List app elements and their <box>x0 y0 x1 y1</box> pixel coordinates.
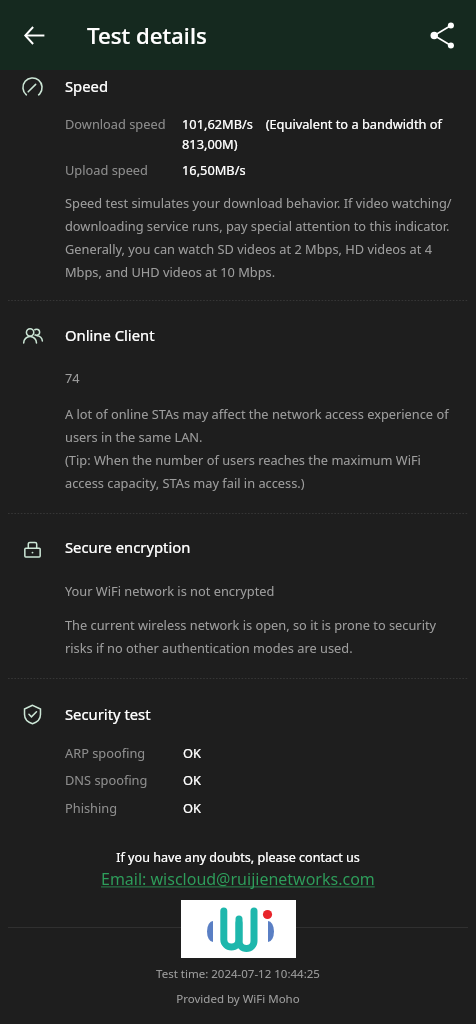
staticText: Upload speed <box>65 161 148 178</box>
staticText: ARP spoofing <box>65 744 146 761</box>
staticText: A lot of online STAs may affect the netw… <box>65 405 456 492</box>
staticText: Test details <box>87 20 207 50</box>
staticText: Speed test simulates your download behav… <box>65 194 456 281</box>
staticText: Secure encryption <box>65 537 191 557</box>
staticText: If you have any doubts, please contact u… <box>0 849 476 866</box>
staticText: The current wireless network is open, so… <box>65 616 456 657</box>
staticText: Security test <box>65 704 151 724</box>
button[interactable]: Back <box>14 15 54 55</box>
staticText: DNS spoofing <box>65 771 148 788</box>
staticText: Online Client <box>65 325 155 345</box>
staticText: OK <box>183 799 201 816</box>
staticText: Phishing <box>65 799 118 816</box>
staticText: OK <box>183 771 201 788</box>
staticText: 74 <box>65 369 456 386</box>
staticText: Your WiFi network is not encrypted <box>65 582 456 599</box>
staticText: Test time: 2024-07-12 10:44:25 <box>0 966 476 982</box>
button[interactable]: Email: wiscloud@ruijienetworks.com <box>0 868 476 890</box>
staticText: Provided by WiFi Moho <box>0 991 476 1007</box>
staticText: 101,62MB/s (Equivalent to a bandwidth of… <box>182 115 462 153</box>
staticText: OK <box>183 744 201 761</box>
button[interactable]: Share <box>422 15 462 55</box>
staticText: 16,50MB/s <box>182 161 246 178</box>
staticText: Email: wiscloud@ruijienetworks.com <box>101 868 375 890</box>
staticText: Download speed <box>65 115 166 132</box>
staticText: Speed <box>65 76 109 96</box>
